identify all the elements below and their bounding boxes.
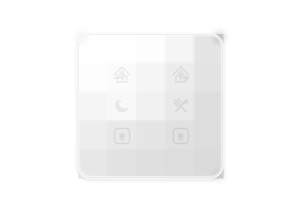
button[interactable]: Scene three [110,124,134,148]
button[interactable]: Leave home scene [169,63,193,87]
button[interactable]: Arrive home scene [110,63,134,87]
button[interactable]: Scene four [169,124,193,148]
button[interactable]: Dining scene [169,94,193,118]
button[interactable]: Night scene [110,94,134,118]
